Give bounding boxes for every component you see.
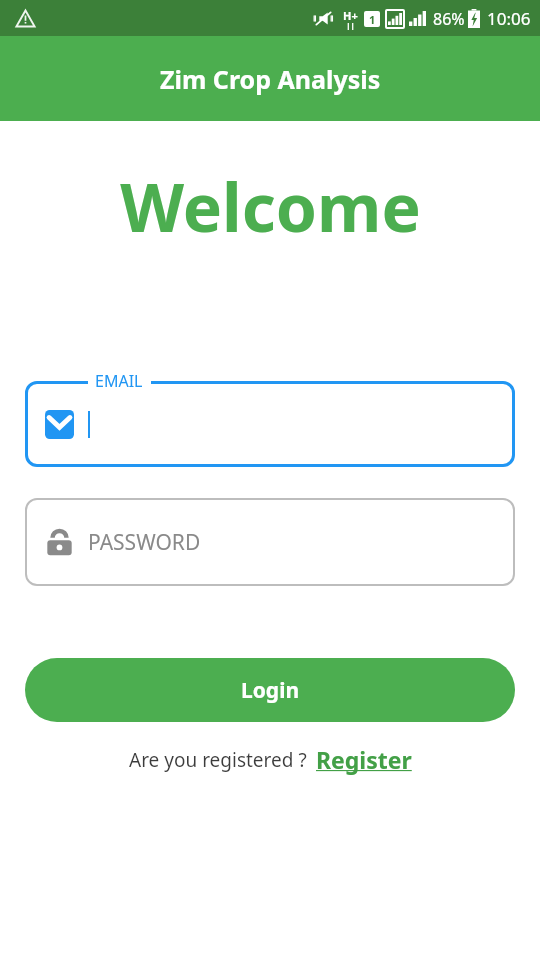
button[interactable]: EMAIL (25, 381, 515, 467)
staticText: 1 (369, 12, 376, 27)
staticText: 86% (433, 8, 465, 30)
staticText: Zim Crop Analysis (160, 62, 381, 96)
staticText: 10:06 (487, 7, 531, 30)
staticText: Register (316, 744, 412, 775)
button[interactable]: Login (25, 658, 515, 722)
staticText: Are you registered ? (129, 747, 307, 773)
button[interactable]: Register (316, 744, 412, 775)
staticText: Welcome (120, 161, 421, 251)
staticText: PASSWORD (88, 528, 201, 557)
button[interactable]: PASSWORD (25, 498, 515, 586)
staticText: EMAIL (95, 370, 143, 392)
staticText: H+ (343, 8, 358, 23)
staticText: Login (241, 676, 300, 705)
